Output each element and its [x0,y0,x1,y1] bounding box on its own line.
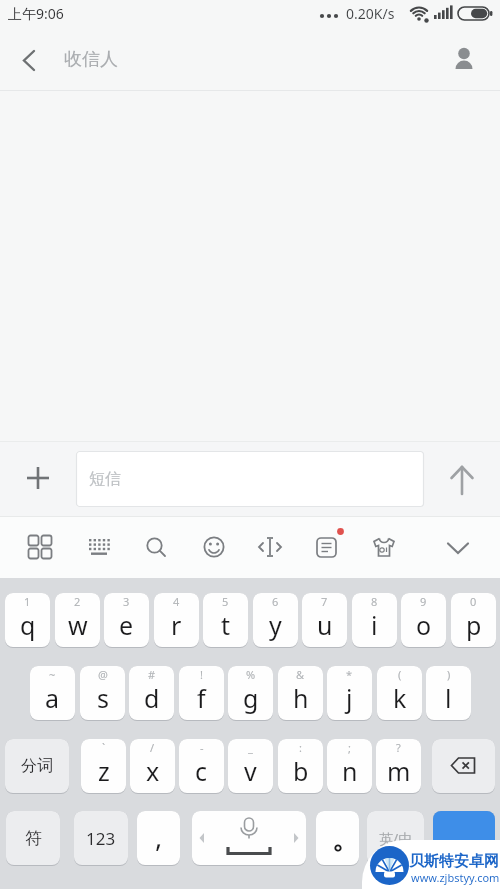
staticText: 贝斯特安卓网 [409,852,499,871]
button[interactable]: ! [179,666,224,721]
staticText: e [119,608,134,642]
button[interactable] [81,529,117,565]
staticText: www.zjbstyy.com [411,870,500,885]
button[interactable]: _ [228,739,273,794]
staticText: & [296,667,305,682]
button[interactable]: - [179,739,224,794]
button[interactable] [138,529,174,565]
button[interactable]: 3 [104,593,149,648]
button[interactable]: ` [81,739,126,794]
staticText: p [466,608,482,642]
button[interactable]: 5 [203,593,248,648]
staticText: # [148,667,156,682]
staticText: i [371,608,378,642]
staticText: s [97,681,109,715]
staticText: 0.20K/s [346,4,395,23]
staticText: ( [398,667,402,682]
button[interactable]: & [278,666,323,721]
staticText: x [146,754,160,788]
button[interactable] [438,529,478,565]
button[interactable]: , [137,811,180,866]
staticText: 1 [24,594,31,609]
staticText: - [200,740,204,755]
staticText: ! [200,667,203,682]
button[interactable]: 0 [451,593,496,648]
staticText: : [299,740,302,755]
staticText: 符 [25,828,42,849]
button[interactable]: ) [426,666,471,721]
staticText: h [293,681,309,715]
staticText: ; [348,740,351,755]
button[interactable]: 分词 [5,739,69,794]
staticText: 0 [470,594,477,609]
staticText: ~ [49,667,56,682]
staticText: v [244,754,257,788]
button[interactable]: 8 [352,593,397,648]
button[interactable] [22,529,58,565]
staticText: 收信人 [64,48,118,71]
staticText: , [155,818,163,855]
button[interactable] [309,529,345,565]
button[interactable]: ( [377,666,422,721]
button[interactable] [432,739,495,794]
button[interactable] [10,40,50,80]
staticText: w [68,608,88,642]
button[interactable]: % [228,666,273,721]
button[interactable]: 符 [6,811,60,866]
button[interactable]: @ [80,666,125,721]
staticText: f [197,681,206,715]
staticText: 9 [420,594,427,609]
button[interactable] [442,458,482,498]
staticText: 7 [321,594,328,609]
button[interactable]: # [129,666,174,721]
button[interactable] [444,40,484,80]
button[interactable]: 2 [55,593,100,648]
staticText: a [45,681,60,715]
button[interactable] [192,811,306,866]
staticText: 短信 [89,469,121,489]
button[interactable]: / [130,739,175,794]
button[interactable]: : [278,739,323,794]
button[interactable]: 9 [401,593,446,648]
staticText: 123 [86,827,116,850]
button[interactable]: 7 [302,593,347,648]
staticText: u [317,608,333,642]
button[interactable] [433,811,495,866]
staticText: @ [98,667,108,682]
staticText: 5 [222,594,229,609]
button[interactable] [316,811,359,866]
staticText: ? [396,740,401,755]
staticText: 6 [272,594,279,609]
button[interactable]: 短信 [76,451,424,507]
button[interactable]: 4 [154,593,199,648]
staticText: l [445,681,452,715]
staticText: 2 [74,594,81,609]
button[interactable]: ; [327,739,372,794]
staticText: ) [447,667,451,682]
staticText: _ [248,740,253,755]
button[interactable]: 英/中 [367,811,424,866]
staticText: c [195,754,208,788]
button[interactable]: 123 [74,811,128,866]
button[interactable]: * [327,666,372,721]
staticText: b [293,754,309,788]
staticText: m [387,754,411,788]
staticText: j [346,681,353,715]
button[interactable] [196,529,232,565]
button[interactable] [252,529,288,565]
staticText: z [98,754,110,788]
staticText: % [246,667,256,682]
staticText: 分词 [21,756,53,776]
staticText: 4 [173,594,180,609]
staticText: 上午9:06 [8,4,64,23]
button[interactable]: ? [376,739,421,794]
button[interactable] [366,529,402,565]
button[interactable]: 6 [253,593,298,648]
button[interactable]: ~ [30,666,75,721]
staticText: r [171,608,182,642]
button[interactable] [18,458,58,498]
staticText: q [20,608,36,642]
staticText: g [243,681,259,715]
button[interactable]: 1 [5,593,50,648]
staticText: ` [102,740,106,755]
